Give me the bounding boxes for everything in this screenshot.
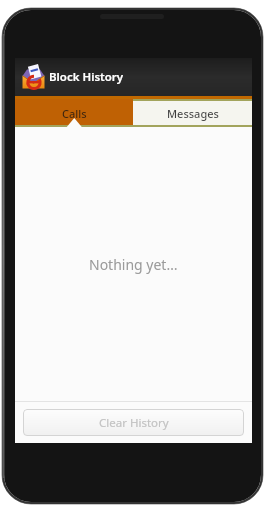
staticText: Messages	[167, 106, 219, 121]
staticText: Calls	[62, 106, 87, 121]
staticText: Nothing yet…	[89, 255, 178, 274]
button[interactable]: Messages	[133, 99, 252, 127]
button[interactable]: Clear History	[23, 409, 244, 436]
staticText: Block History	[49, 69, 124, 85]
button[interactable]: Block History	[15, 58, 252, 96]
staticText: Clear History	[99, 415, 169, 431]
button[interactable]: Calls	[15, 99, 133, 127]
